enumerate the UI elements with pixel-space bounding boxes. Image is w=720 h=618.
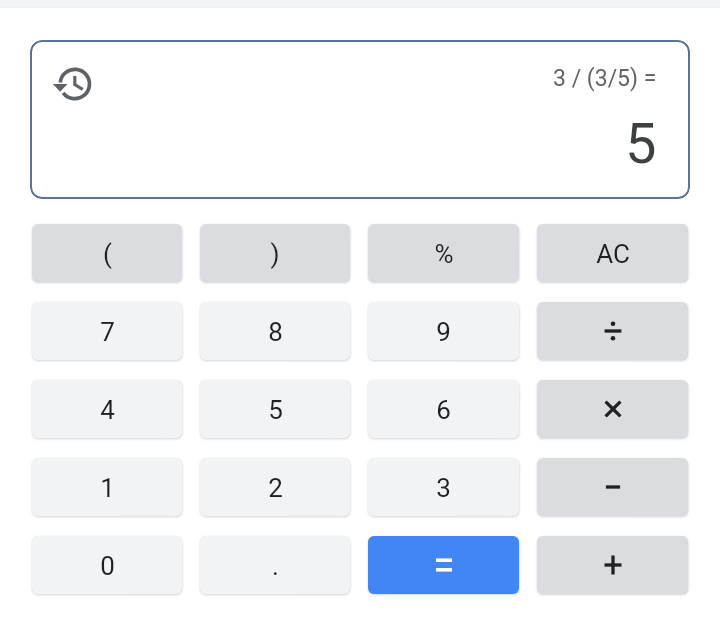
staticText: 3 / (3/5) = [553, 65, 657, 92]
button[interactable]: 7 [32, 302, 182, 360]
staticText: 2 [268, 473, 283, 503]
button[interactable]: 4 [32, 380, 182, 438]
button[interactable]: 8 [200, 302, 350, 360]
staticText: ) [270, 239, 280, 269]
staticText: . [272, 551, 279, 581]
button[interactable]: divide [537, 302, 688, 360]
button[interactable]: equals [368, 536, 519, 594]
staticText: 3 [436, 473, 451, 503]
staticText: 0 [100, 551, 115, 581]
button[interactable]: ) [200, 224, 350, 282]
button[interactable]: times [537, 380, 688, 438]
button[interactable]: 5 [200, 380, 350, 438]
staticText: ( [103, 239, 112, 269]
button[interactable]: 3 [368, 458, 519, 516]
button[interactable]: ( [32, 224, 182, 282]
staticText: % [434, 239, 454, 269]
button[interactable]: plus [537, 536, 688, 594]
button[interactable]: AC [537, 224, 688, 282]
staticText: 5 [268, 395, 283, 425]
staticText: 8 [268, 317, 283, 347]
staticText: AC [596, 239, 630, 269]
staticText: 1 [100, 473, 115, 503]
staticText: 5 [625, 111, 657, 177]
button[interactable]: 2 [200, 458, 350, 516]
staticText: 7 [100, 317, 115, 347]
staticText: 6 [436, 395, 451, 425]
button[interactable]: 6 [368, 380, 519, 438]
button[interactable]: minus [537, 458, 688, 516]
button[interactable]: . [200, 536, 350, 594]
button[interactable]: % [368, 224, 519, 282]
staticText: 9 [436, 317, 451, 347]
button[interactable]: 1 [32, 458, 182, 516]
button[interactable]: History [47, 58, 99, 110]
staticText: 4 [100, 395, 115, 425]
button[interactable]: 9 [368, 302, 519, 360]
button[interactable]: 0 [32, 536, 182, 594]
